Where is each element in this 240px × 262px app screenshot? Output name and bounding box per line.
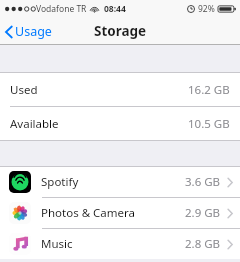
staticText: 16.2 GB	[188, 82, 230, 98]
staticText: 10.5 GB	[188, 116, 230, 132]
staticText: Storage	[94, 22, 147, 40]
button[interactable]: Spotify	[0, 167, 240, 197]
staticText: Music	[41, 236, 73, 252]
button[interactable]: Available	[0, 107, 240, 140]
button[interactable]: Music	[0, 229, 240, 259]
staticText: Vodafone TR	[36, 3, 87, 15]
staticText: 92%	[198, 3, 215, 15]
staticText: 2.8 GB	[185, 236, 221, 252]
button[interactable]: Photos & Camera	[0, 198, 240, 228]
staticText: 08:44	[104, 3, 126, 15]
staticText: 3.6 GB	[185, 174, 221, 190]
staticText: Used	[10, 82, 38, 98]
staticText: Photos & Camera	[41, 205, 135, 221]
button[interactable]: Usage	[0, 19, 58, 44]
staticText: Available	[10, 116, 59, 132]
button[interactable]: Used	[0, 73, 240, 106]
staticText: 2.9 GB	[185, 205, 221, 221]
staticText: Usage	[15, 23, 52, 40]
staticText: Spotify	[41, 174, 79, 190]
